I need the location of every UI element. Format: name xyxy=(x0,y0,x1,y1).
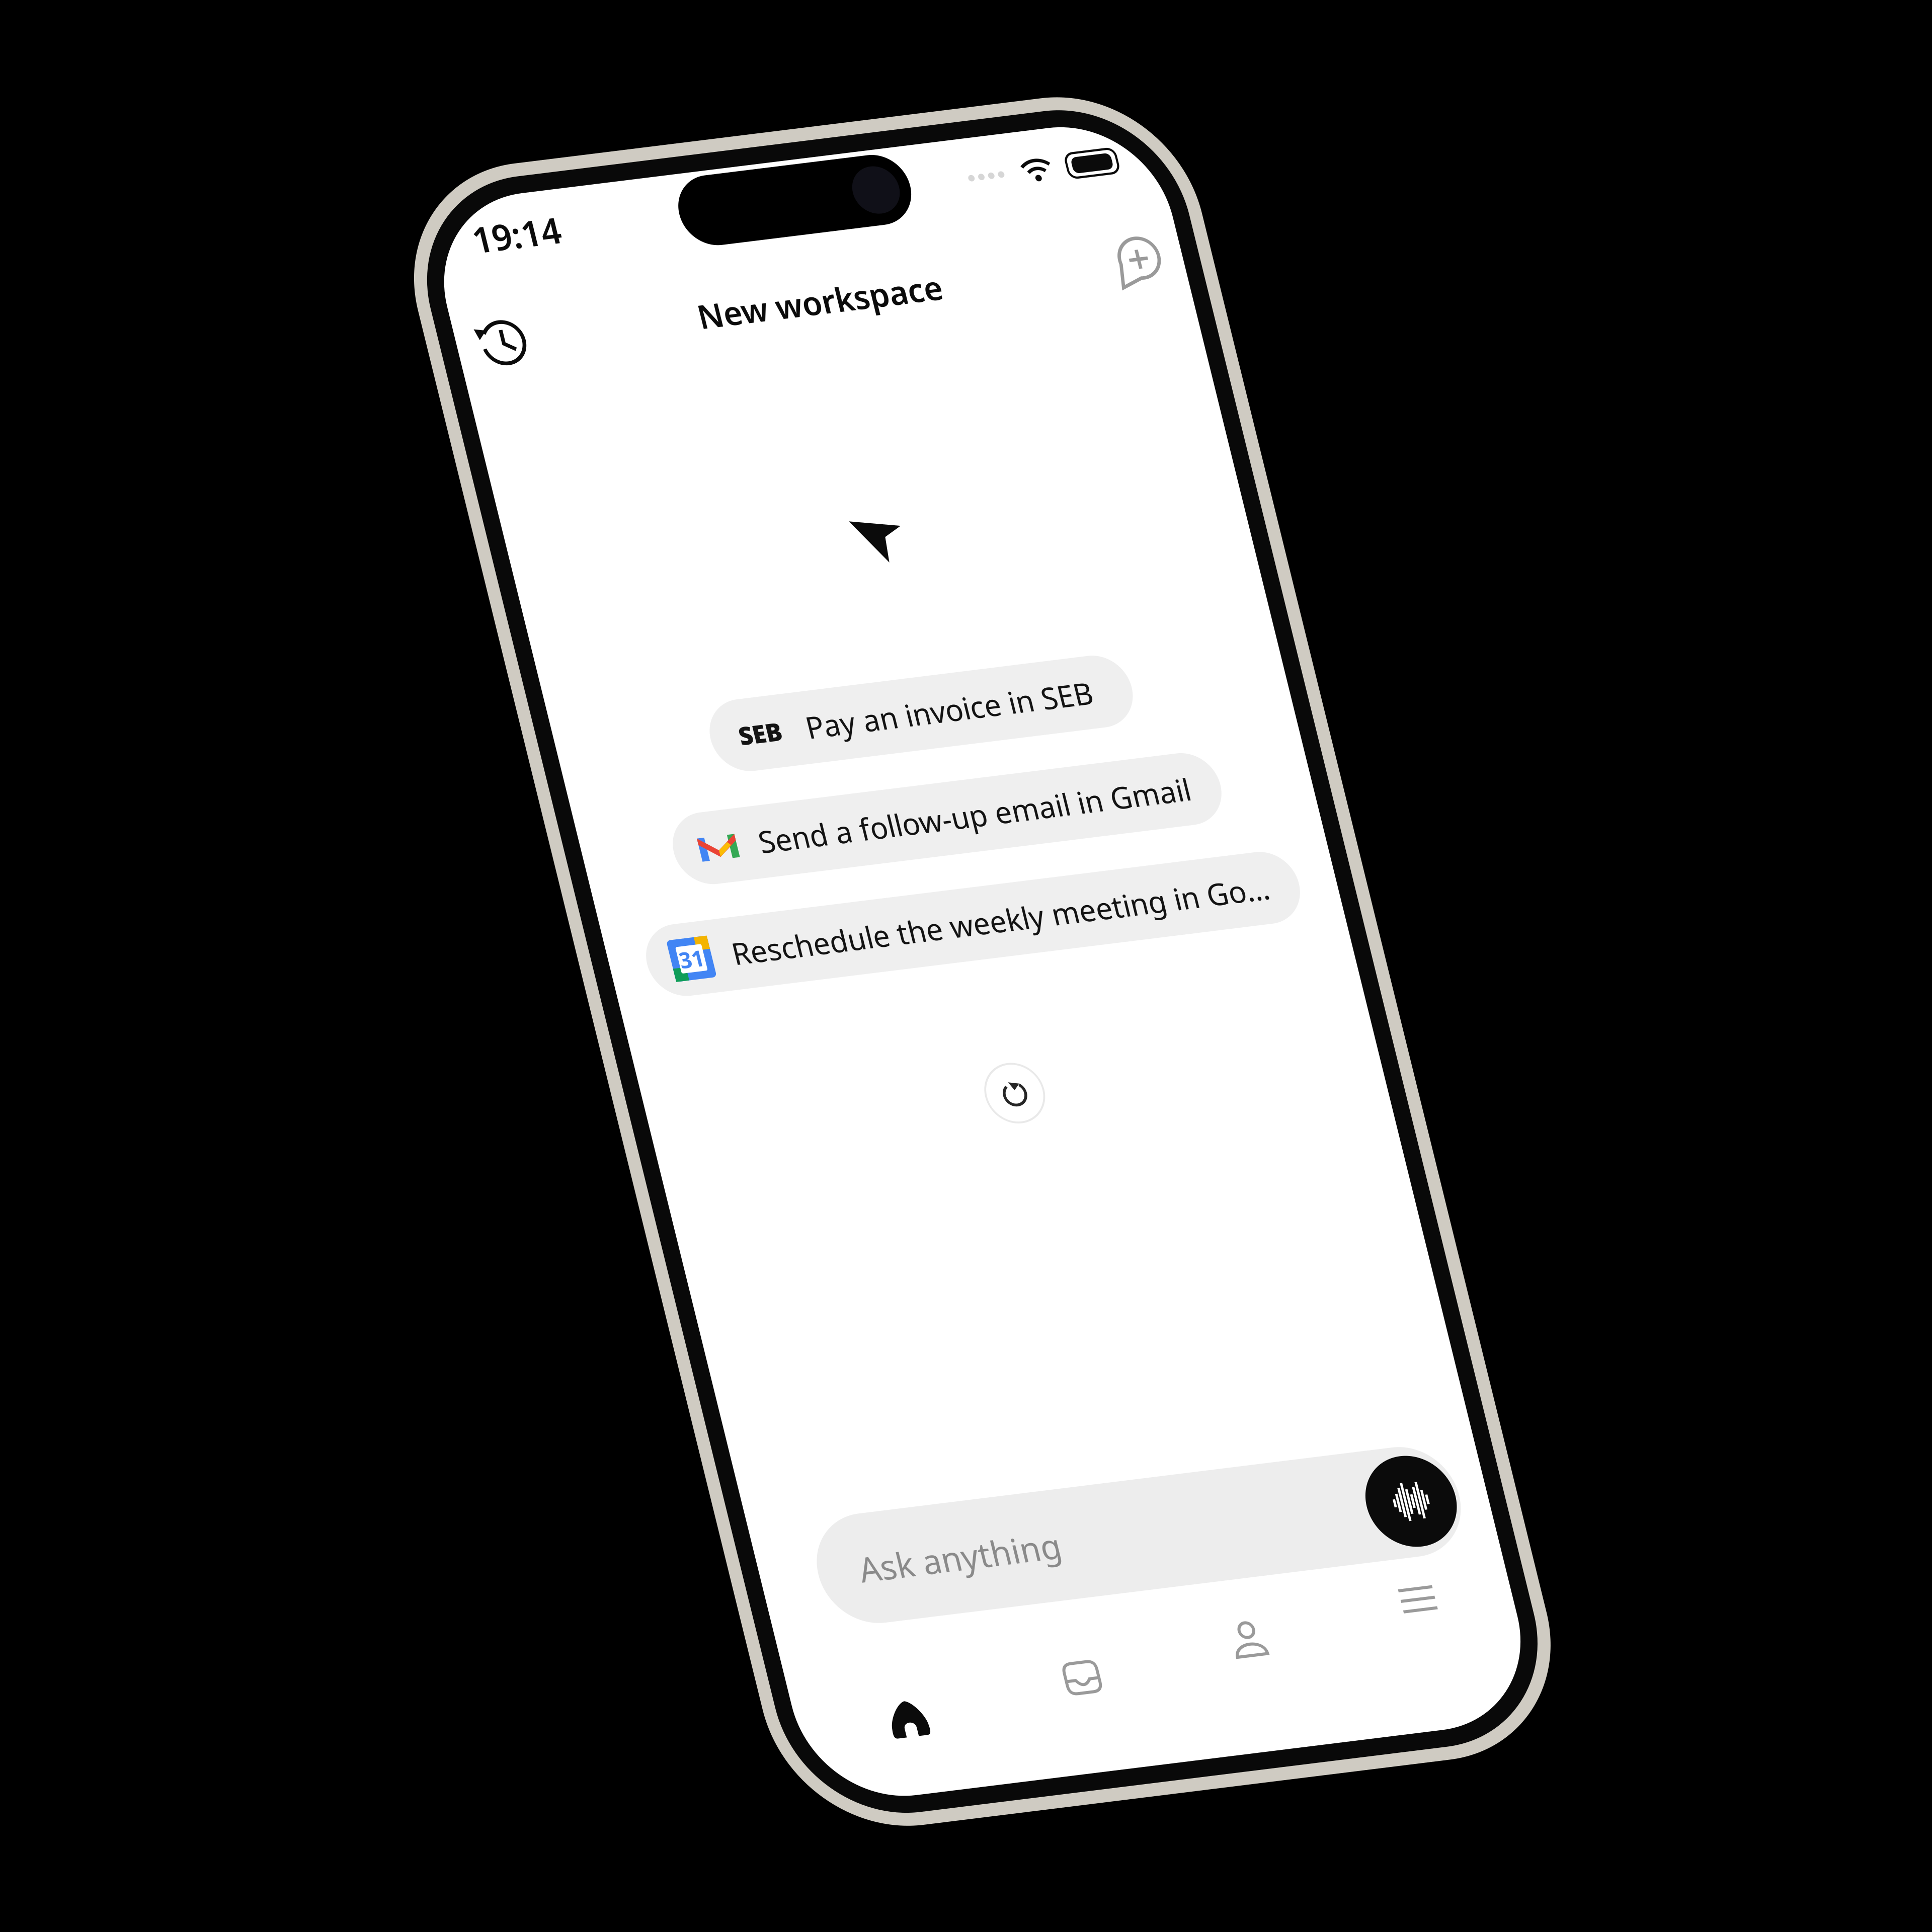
button[interactable]: Home xyxy=(617,1656,792,1751)
staticText: New workspace xyxy=(840,274,1092,317)
staticText: Send a follow-up email in Gmail xyxy=(771,801,1217,841)
button[interactable]: Inbox xyxy=(792,1656,966,1751)
staticText: 31 xyxy=(662,913,687,942)
button[interactable]: SEB xyxy=(748,678,1184,750)
button[interactable]: Profile xyxy=(966,1656,1140,1751)
staticText: SEB xyxy=(777,697,822,730)
button[interactable]: Refresh suggestions xyxy=(936,1070,996,1129)
button[interactable]: Send a follow-up email in Gmail xyxy=(683,785,1249,857)
button[interactable]: Menu xyxy=(1140,1656,1315,1751)
staticText: 19:14 xyxy=(633,169,723,216)
staticText: Ask anything xyxy=(692,1528,900,1573)
button[interactable]: 31 xyxy=(629,891,1303,964)
staticText: Pay an invoice in SEB xyxy=(847,694,1143,734)
staticText: Reschedule the weekly meeting in Go… xyxy=(717,908,1272,948)
button[interactable]: Voice input xyxy=(1217,1505,1309,1596)
